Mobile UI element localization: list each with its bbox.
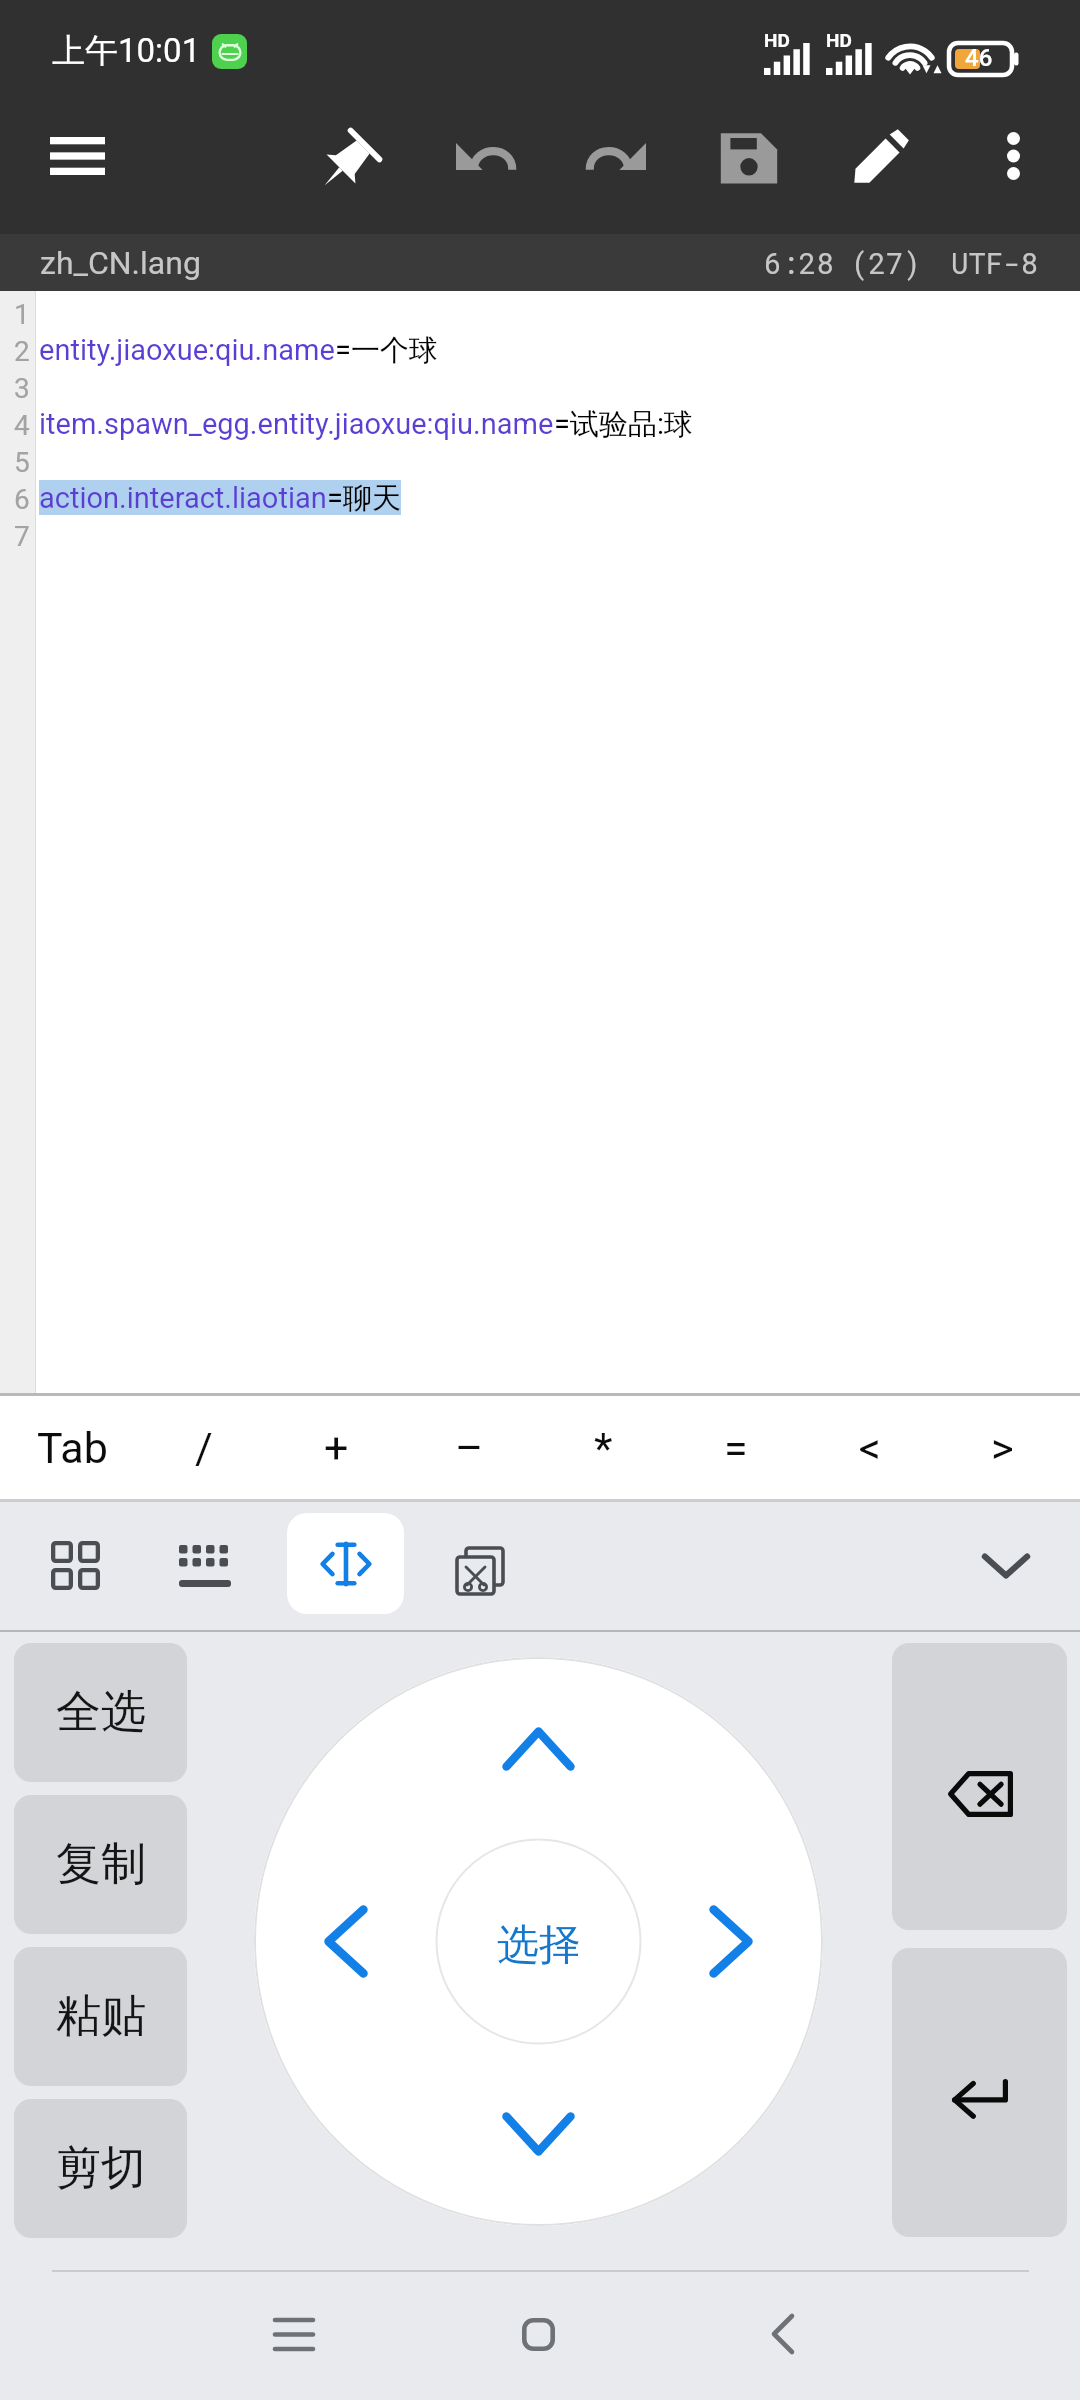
- staticText: 上午10:01: [52, 30, 201, 72]
- button[interactable]: More options: [947, 93, 1079, 219]
- staticText: +: [324, 1423, 349, 1473]
- button[interactable]: Move cursor left: [254, 1852, 414, 2032]
- staticText: HD: [826, 29, 852, 51]
- staticText: 全选: [56, 1684, 146, 1741]
- button[interactable]: Move cursor right: [663, 1852, 823, 2032]
- button[interactable]: Home: [478, 2274, 598, 2394]
- staticText: UTF-8: [951, 244, 1039, 282]
- staticText: Tab: [37, 1423, 108, 1473]
- button[interactable]: Pin: [287, 93, 419, 219]
- button[interactable]: *: [537, 1396, 669, 1499]
- staticText: 粘贴: [56, 1988, 146, 2045]
- staticText: /: [195, 1423, 213, 1473]
- button[interactable]: Recents: [234, 2274, 354, 2394]
- staticText: 1: [14, 298, 30, 331]
- button[interactable]: Apps: [26, 1511, 126, 1621]
- staticText: HD: [764, 29, 790, 51]
- staticText: action.interact.liaotian: [39, 481, 327, 515]
- staticText: *: [594, 1423, 613, 1473]
- button[interactable]: +: [270, 1396, 402, 1499]
- staticText: 复制: [56, 1836, 146, 1893]
- button[interactable]: Back: [723, 2274, 843, 2394]
- staticText: 46: [965, 44, 993, 72]
- staticText: >: [991, 1423, 1014, 1473]
- button[interactable]: Move cursor down: [449, 2066, 629, 2226]
- button[interactable]: Save: [683, 93, 815, 219]
- button[interactable]: =: [670, 1396, 802, 1499]
- staticText: entity.jiaoxue:qiu.name: [39, 333, 335, 367]
- button[interactable]: –: [403, 1396, 535, 1499]
- button[interactable]: >: [936, 1396, 1068, 1499]
- staticText: zh_CN.lang: [40, 244, 201, 282]
- button[interactable]: Backspace: [892, 1643, 1067, 1930]
- staticText: 3: [14, 372, 30, 405]
- button[interactable]: Clipboard: [430, 1516, 530, 1626]
- staticText: =聊天: [327, 480, 401, 515]
- button[interactable]: 剪切: [14, 2099, 187, 2238]
- button[interactable]: Menu: [18, 97, 136, 215]
- button[interactable]: Undo: [419, 93, 551, 219]
- button[interactable]: Cursor control: [287, 1513, 404, 1614]
- button[interactable]: Hide keyboard: [951, 1511, 1061, 1621]
- button[interactable]: 复制: [14, 1795, 187, 1934]
- button[interactable]: <: [804, 1396, 936, 1499]
- staticText: 2: [14, 335, 30, 368]
- staticText: 4: [14, 409, 30, 442]
- button[interactable]: /: [138, 1396, 270, 1499]
- staticText: 5: [14, 446, 30, 479]
- button[interactable]: Edit: [815, 93, 947, 219]
- button[interactable]: 全选: [14, 1643, 187, 1782]
- button[interactable]: Move cursor up: [449, 1657, 629, 1817]
- staticText: =试验品:球: [554, 406, 693, 441]
- button[interactable]: Tab: [6, 1396, 138, 1499]
- staticText: –: [455, 1423, 484, 1473]
- button[interactable]: 粘贴: [14, 1947, 187, 2086]
- button[interactable]: 选择: [437, 1840, 641, 2044]
- button[interactable]: Keyboard: [155, 1511, 255, 1621]
- staticText: 6:28 (27): [764, 244, 921, 282]
- staticText: <: [859, 1423, 881, 1473]
- staticText: 剪切: [56, 2140, 146, 2197]
- staticText: 选择: [497, 1919, 581, 1972]
- staticText: =一个球: [335, 332, 438, 367]
- staticText: 7: [14, 520, 30, 553]
- staticText: 6: [14, 483, 30, 516]
- staticText: item.spawn_egg.entity.jiaoxue:qiu.name: [39, 407, 554, 441]
- button[interactable]: Redo: [551, 93, 683, 219]
- button[interactable]: Enter: [892, 1948, 1067, 2237]
- staticText: =: [724, 1423, 748, 1473]
